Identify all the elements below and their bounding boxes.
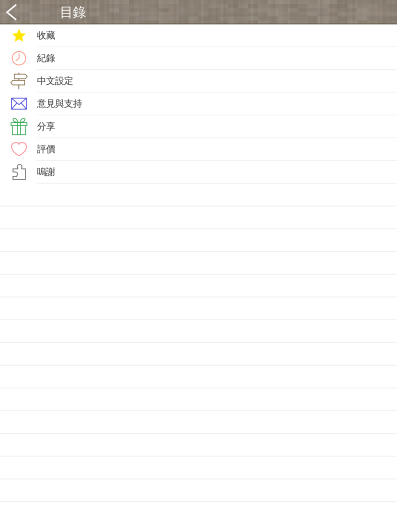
button[interactable]: 收藏 [0,24,397,47]
button[interactable]: 中文設定 [0,70,397,93]
staticText: 中文設定 [37,75,73,87]
staticText: 意見與支持 [37,98,82,109]
staticText: 嗚謝 [37,166,55,178]
staticText: 評價 [37,143,55,155]
staticText: 紀錄 [37,52,55,64]
staticText: 收藏 [37,30,55,41]
button[interactable]: Back [0,0,23,24]
button[interactable]: 評價 [0,138,397,161]
button[interactable]: 分享 [0,115,397,138]
staticText: 分享 [37,121,55,132]
button[interactable]: 紀錄 [0,47,397,70]
button[interactable]: 意見與支持 [0,93,397,115]
staticText: 目錄 [60,4,86,20]
button[interactable]: 嗚謝 [0,161,397,184]
